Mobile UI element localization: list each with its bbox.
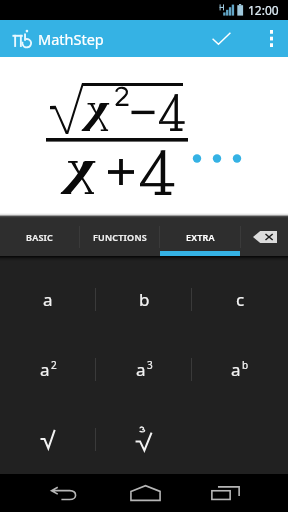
staticText: c [236, 288, 245, 311]
staticText: a [231, 358, 241, 381]
staticText: a [136, 358, 146, 381]
button[interactable]: b [96, 265, 192, 334]
staticText: b [139, 288, 150, 311]
button[interactable]: a [0, 334, 96, 404]
button[interactable] [96, 404, 192, 474]
staticText: a [40, 358, 50, 381]
button[interactable]: BASIC [0, 218, 79, 256]
button[interactable]: FUNCTIONS [80, 218, 159, 256]
button[interactable]: Done [200, 20, 242, 57]
staticText: EXTRA [186, 231, 215, 243]
button[interactable]: EXTRA [160, 218, 240, 256]
button[interactable]: Home [111, 474, 179, 512]
staticText: BASIC [26, 231, 54, 243]
staticText: FUNCTIONS [93, 231, 147, 243]
staticText: 2 [51, 358, 57, 372]
button[interactable]: a [0, 265, 96, 334]
button[interactable] [0, 404, 96, 474]
button[interactable]: c [192, 265, 288, 334]
staticText: MathStep [38, 29, 104, 49]
button[interactable]: Backspace [241, 218, 288, 256]
button[interactable] [0, 57, 288, 213]
staticText: 12:00 [248, 2, 279, 18]
button[interactable]: a [96, 334, 192, 404]
button[interactable]: Back [30, 474, 98, 512]
button[interactable]: Recents [191, 474, 259, 512]
staticText: 3 [147, 358, 153, 372]
button[interactable]: a [192, 334, 288, 404]
button[interactable]: More options [254, 20, 288, 57]
staticText: b [242, 358, 249, 372]
staticText: a [43, 288, 53, 311]
